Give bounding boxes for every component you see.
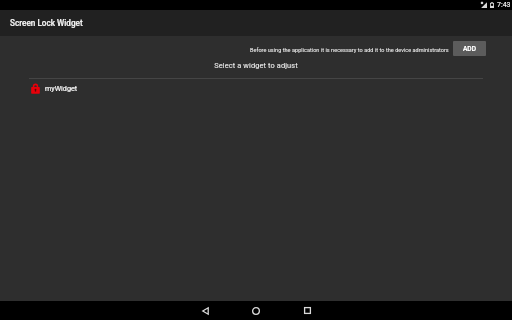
- button[interactable]: ADD: [453, 41, 486, 56]
- button[interactable]: myWidget: [0, 80, 512, 96]
- staticText: myWidget: [45, 84, 78, 92]
- staticText: Before using the application it is neces…: [250, 47, 449, 53]
- staticText: 7:43: [497, 1, 511, 9]
- button[interactable]: Back: [195, 301, 215, 320]
- staticText: Select a widget to adjust: [0, 61, 512, 70]
- staticText: Screen Lock Widget: [10, 18, 83, 28]
- button[interactable]: Home: [246, 301, 266, 320]
- button[interactable]: Recents: [297, 301, 317, 320]
- staticText: ADD: [463, 45, 476, 53]
